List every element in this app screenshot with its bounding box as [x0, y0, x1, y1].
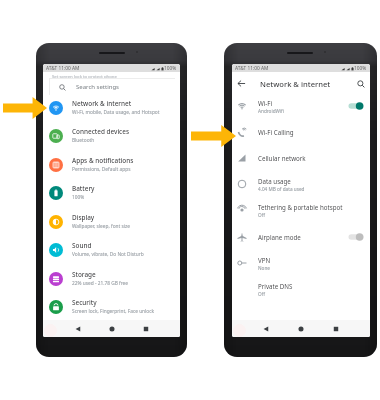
staticText: AT&T 11:00 AM: [46, 65, 80, 72]
staticText: AT&T 11:00 AM: [235, 65, 269, 72]
button[interactable]: Security: [43, 292, 180, 321]
staticText: Network & internet: [72, 99, 132, 108]
button[interactable]: Back: [60, 320, 95, 337]
staticText: Cellular network: [258, 154, 306, 162]
staticText: Wi-Fi: [258, 99, 273, 107]
staticText: Tethering & portable hotspot: [258, 203, 343, 211]
button[interactable]: Search: [351, 74, 370, 93]
staticText: Airplane mode: [258, 233, 301, 241]
button[interactable]: Display: [43, 207, 180, 236]
button[interactable]: Connected devices: [43, 121, 180, 150]
staticText: Wi-Fi, mobile, Data usage, and Hotspot: [72, 109, 160, 116]
button[interactable]: Battery: [43, 178, 180, 207]
button[interactable]: Airplane mode: [232, 224, 370, 250]
button[interactable]: Wi-Fi: [232, 93, 370, 119]
staticText: Network & internet: [260, 79, 331, 89]
staticText: Set screen lock to protect phone: [52, 73, 117, 79]
staticText: 4.04 MB of data used: [258, 186, 305, 192]
staticText: 100%: [354, 65, 367, 72]
staticText: Search settings: [76, 83, 119, 91]
staticText: Connected devices: [72, 127, 130, 136]
button[interactable]: Toggle: [347, 100, 366, 112]
staticText: Security: [72, 298, 97, 307]
button[interactable]: Sound: [43, 235, 180, 264]
button[interactable]: Data usage: [232, 171, 370, 197]
staticText: 22% used - 21.78 GB free: [72, 280, 128, 287]
button[interactable]: Search settings: [50, 79, 175, 95]
staticText: Off: [258, 212, 265, 218]
staticText: VPN: [258, 256, 271, 264]
button[interactable]: Toggle: [347, 231, 366, 243]
button[interactable]: Storage: [43, 264, 180, 293]
staticText: Wallpaper, sleep, font size: [72, 223, 130, 230]
button[interactable]: Home: [95, 320, 129, 337]
staticText: 100%: [72, 194, 85, 201]
staticText: Storage: [72, 270, 96, 279]
staticText: None: [258, 265, 270, 271]
button[interactable]: Back: [249, 320, 283, 337]
button[interactable]: Network & internet: [43, 93, 180, 122]
button[interactable]: Back: [232, 74, 251, 93]
button[interactable]: Cellular network: [232, 145, 370, 171]
button[interactable]: Private DNS: [232, 276, 370, 302]
staticText: Data usage: [258, 177, 291, 185]
button[interactable]: Recents: [129, 320, 163, 337]
button[interactable]: Wi-Fi Calling: [232, 119, 370, 145]
staticText: 100%: [164, 65, 177, 72]
staticText: Off: [258, 291, 265, 297]
staticText: Battery: [72, 184, 95, 193]
staticText: Wi-Fi Calling: [258, 128, 294, 136]
button[interactable]: Apps & notifications: [43, 150, 180, 179]
staticText: Permissions, Default apps: [72, 166, 131, 173]
staticText: Volume, vibrate, Do Not Disturb: [72, 251, 144, 258]
staticText: Private DNS: [258, 282, 293, 290]
staticText: Sound: [72, 241, 92, 250]
button[interactable]: Home: [283, 320, 318, 337]
button[interactable]: Recents: [318, 320, 353, 337]
staticText: Apps & notifications: [72, 156, 134, 165]
staticText: Screen lock, Fingerprint, Face unlock: [72, 308, 155, 315]
button[interactable]: VPN: [232, 250, 370, 276]
staticText: Display: [72, 213, 95, 222]
button[interactable]: Tethering & portable hotspot: [232, 197, 370, 223]
staticText: Bluetooth: [72, 137, 95, 144]
staticText: AndroidWifi: [258, 108, 284, 114]
